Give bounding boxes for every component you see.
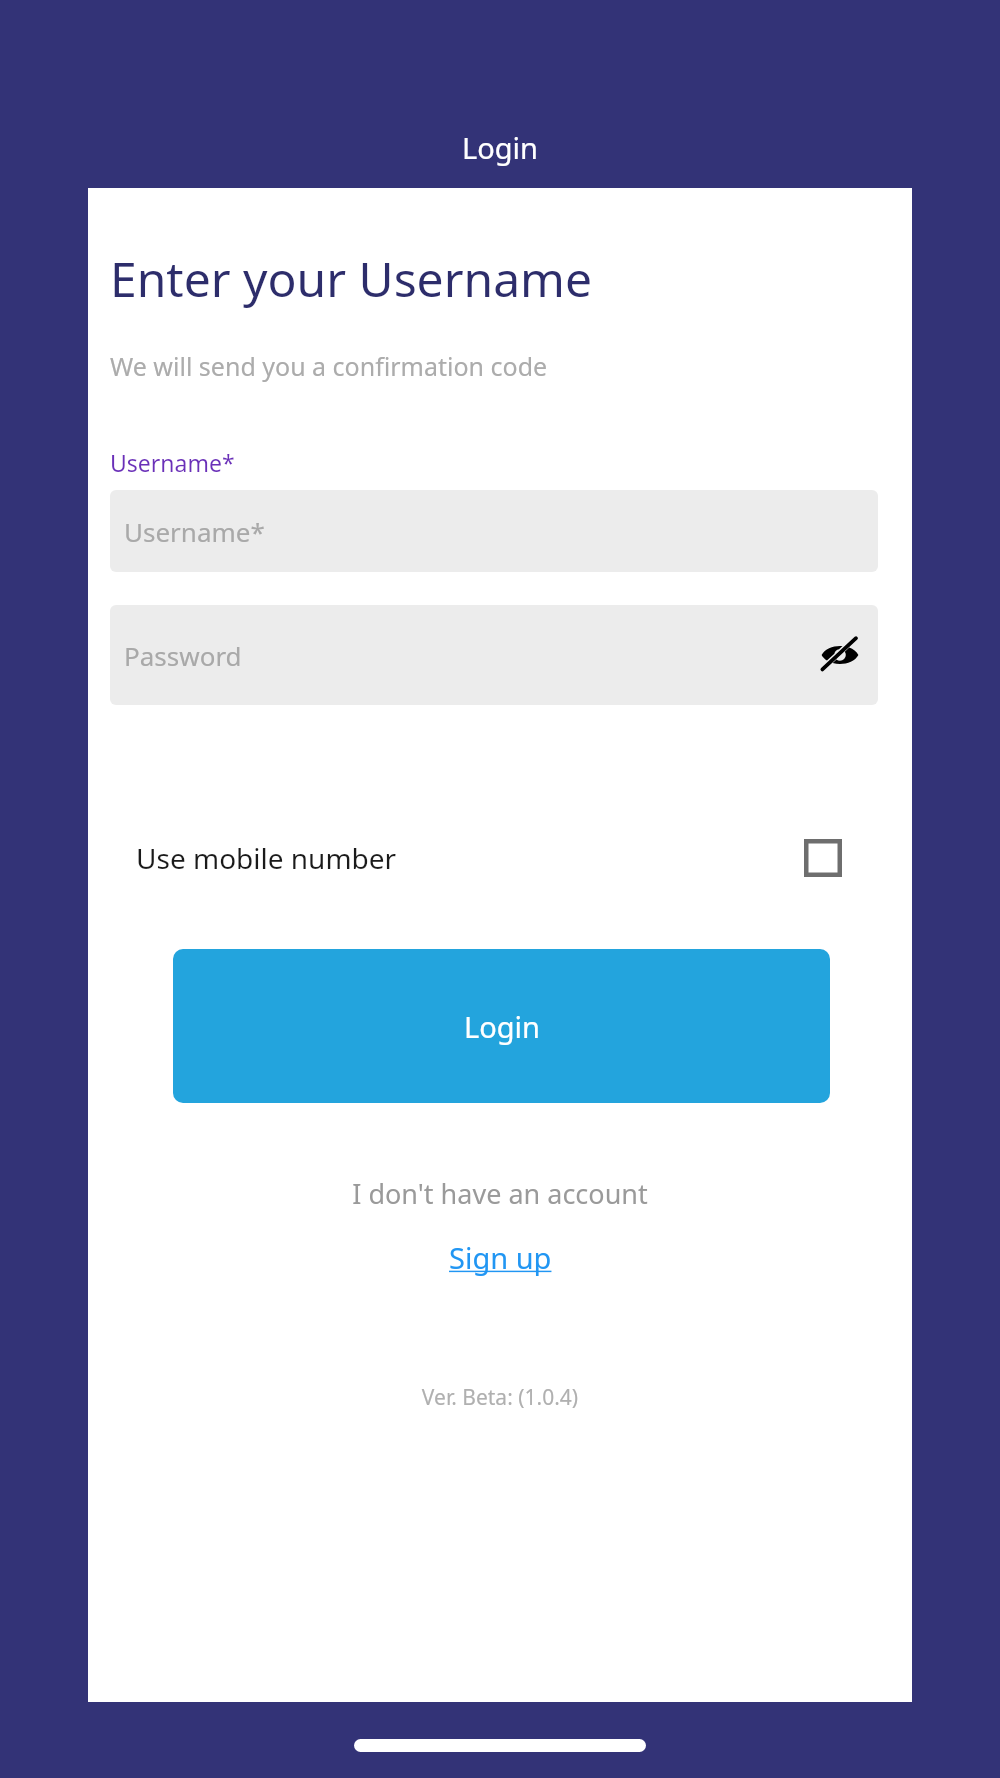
staticText: Enter your Username — [110, 246, 593, 311]
staticText: Login — [462, 128, 538, 167]
staticText: Use mobile number — [136, 839, 804, 877]
button[interactable]: Password — [110, 605, 878, 705]
staticText: Username* — [124, 514, 265, 549]
button[interactable]: Use mobile number — [136, 829, 842, 887]
staticText: Username* — [110, 447, 235, 478]
staticText: I don't have an account — [88, 1175, 912, 1212]
staticText: Password — [124, 638, 808, 673]
button[interactable]: Sign up — [435, 1232, 566, 1283]
staticText: We will send you a confirmation code — [110, 349, 548, 383]
staticText: Sign up — [449, 1238, 552, 1277]
button[interactable]: Login — [173, 949, 830, 1103]
button[interactable]: Username* — [110, 490, 878, 572]
button[interactable]: Show password — [808, 623, 872, 687]
staticText: Login — [464, 1007, 540, 1046]
staticText: Ver. Beta: (1.0.4) — [88, 1383, 912, 1412]
